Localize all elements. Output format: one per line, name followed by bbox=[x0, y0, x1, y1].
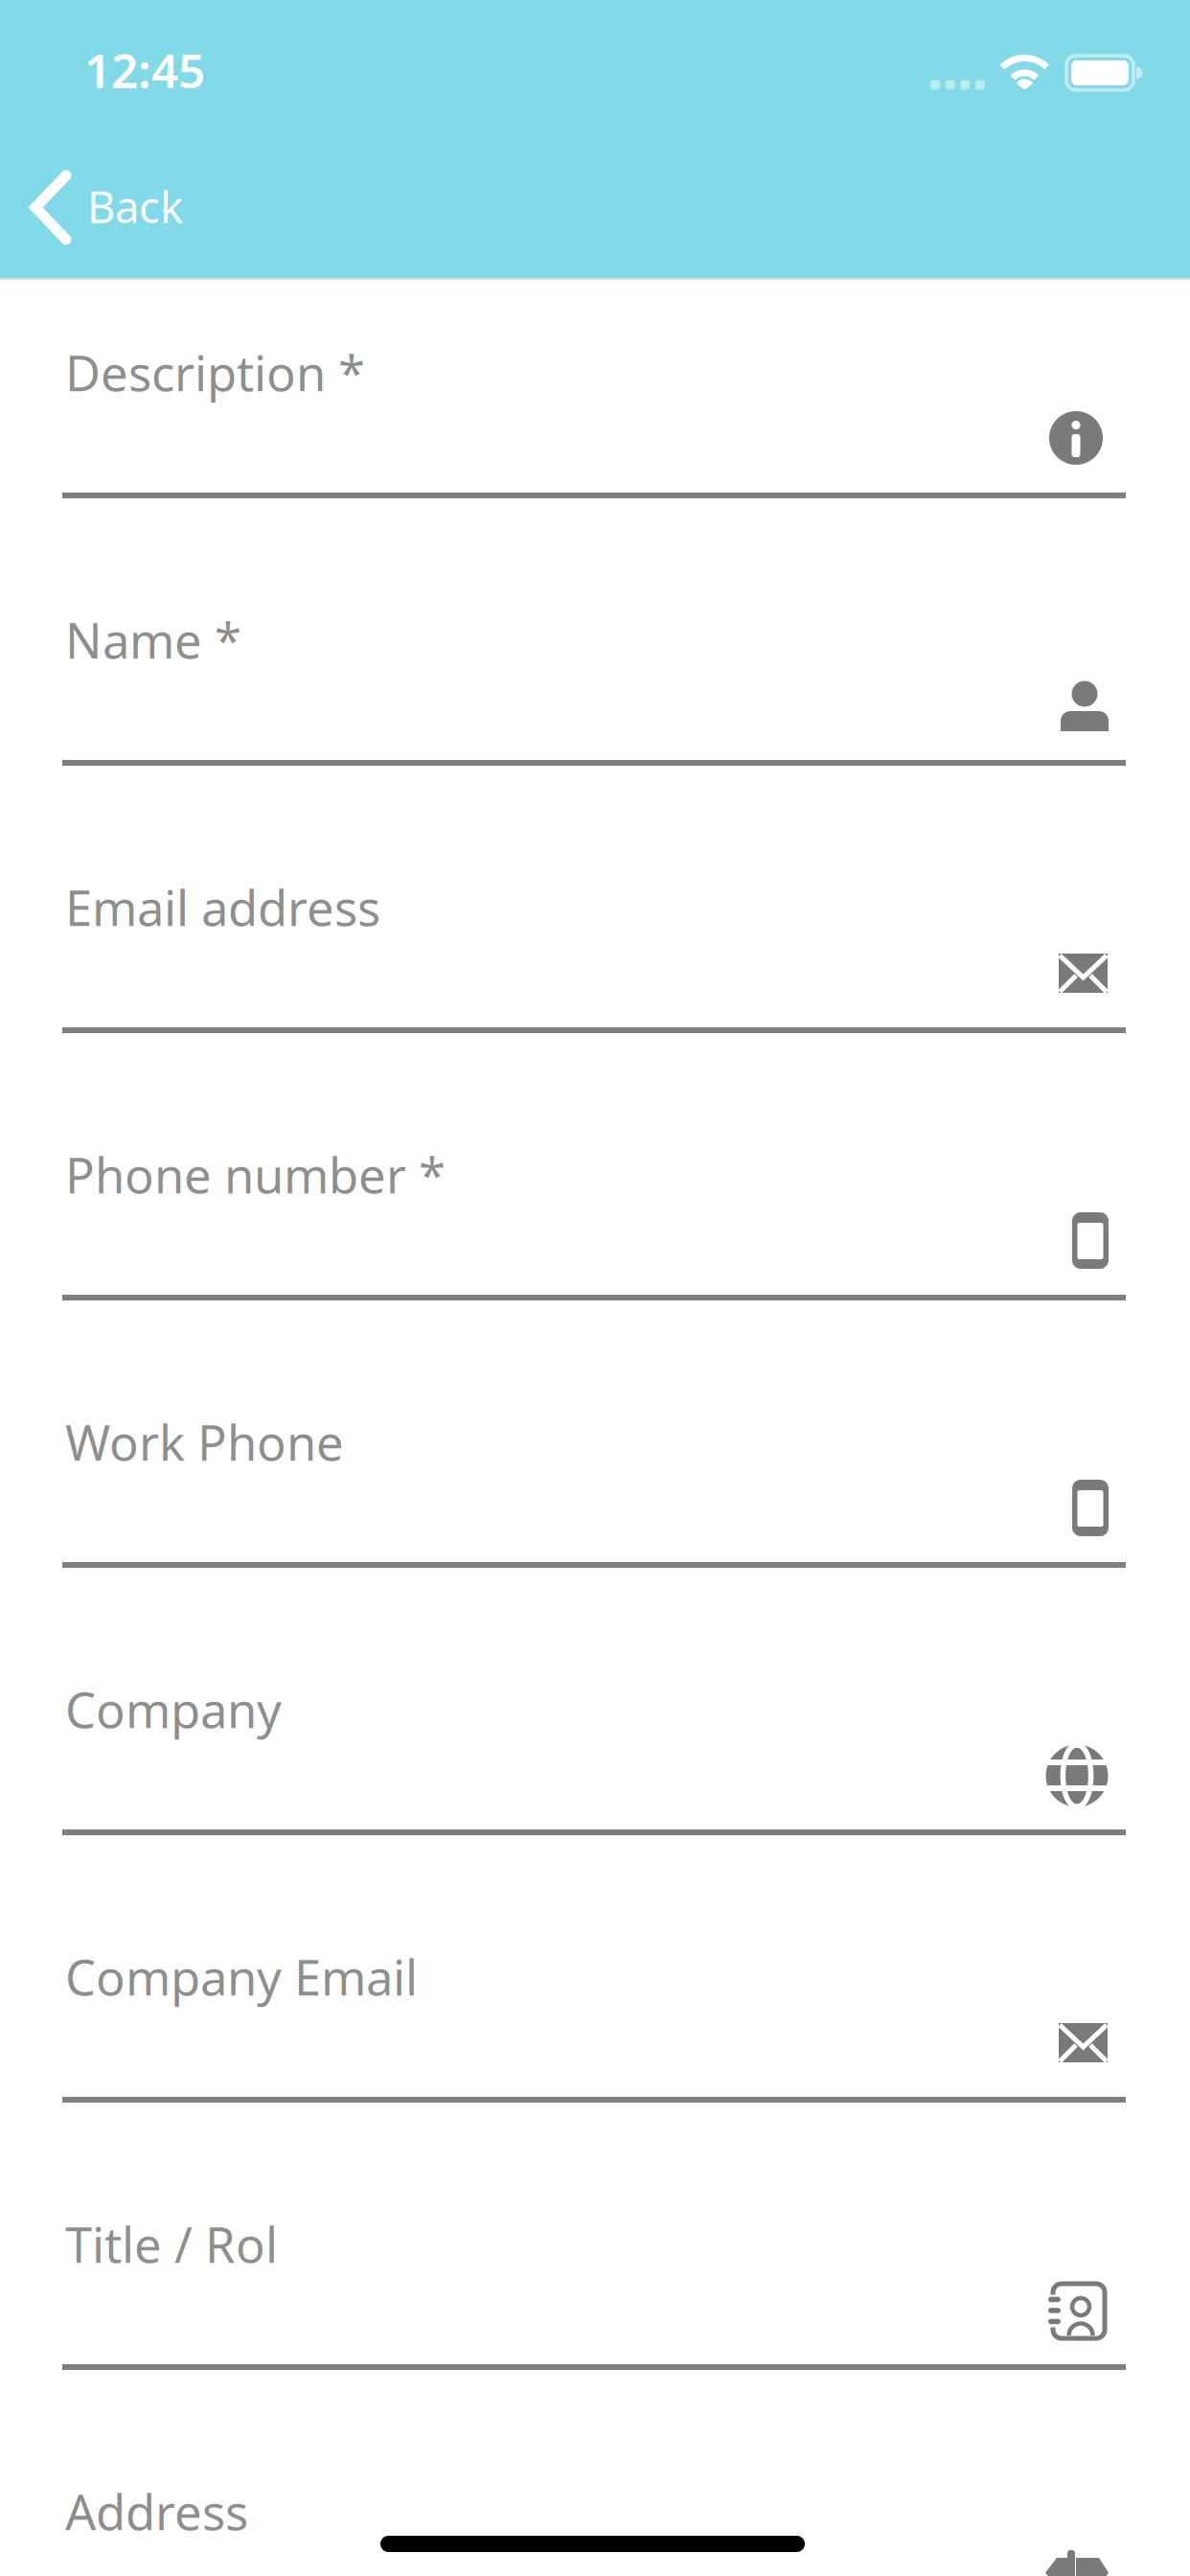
button[interactable]: Description * bbox=[0, 232, 1190, 500]
staticText: Phone number * bbox=[65, 1142, 446, 1207]
staticText: 12:45 bbox=[84, 38, 205, 101]
button[interactable]: Email address bbox=[0, 767, 1190, 1035]
button[interactable]: Phone number * bbox=[0, 1034, 1190, 1302]
staticText: Title / Rol bbox=[65, 2212, 278, 2276]
staticText: Back bbox=[87, 177, 183, 235]
button[interactable]: Company Email bbox=[0, 1836, 1190, 2104]
button[interactable]: Company bbox=[0, 1569, 1190, 1837]
button[interactable]: Address bbox=[0, 2371, 1190, 2576]
staticText: Address bbox=[65, 2479, 248, 2544]
button[interactable]: Back bbox=[25, 168, 255, 247]
staticText: Email address bbox=[65, 875, 380, 939]
staticText: Name * bbox=[65, 608, 241, 672]
staticText: Company bbox=[65, 1677, 282, 1742]
staticText: Description * bbox=[65, 340, 365, 405]
button[interactable]: Title / Rol bbox=[0, 2104, 1190, 2372]
button[interactable]: Work Phone bbox=[0, 1301, 1190, 1570]
staticText: Company Email bbox=[65, 1944, 418, 2009]
button[interactable]: Name * bbox=[0, 499, 1190, 768]
staticText: Work Phone bbox=[65, 1410, 344, 1474]
